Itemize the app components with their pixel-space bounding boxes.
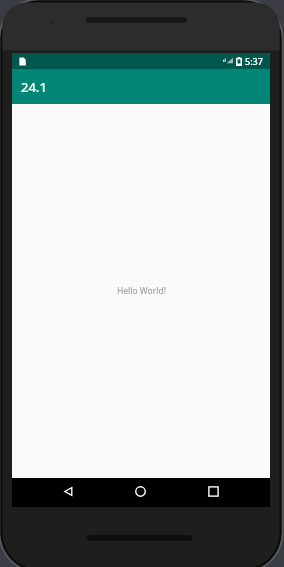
staticText: 24.1	[21, 78, 47, 96]
button[interactable]: Back	[50, 478, 86, 507]
button[interactable]: Recents	[195, 478, 231, 507]
button[interactable]: Home	[122, 478, 158, 507]
staticText: Hello World!	[117, 285, 166, 297]
staticText: 5:37	[245, 55, 263, 67]
